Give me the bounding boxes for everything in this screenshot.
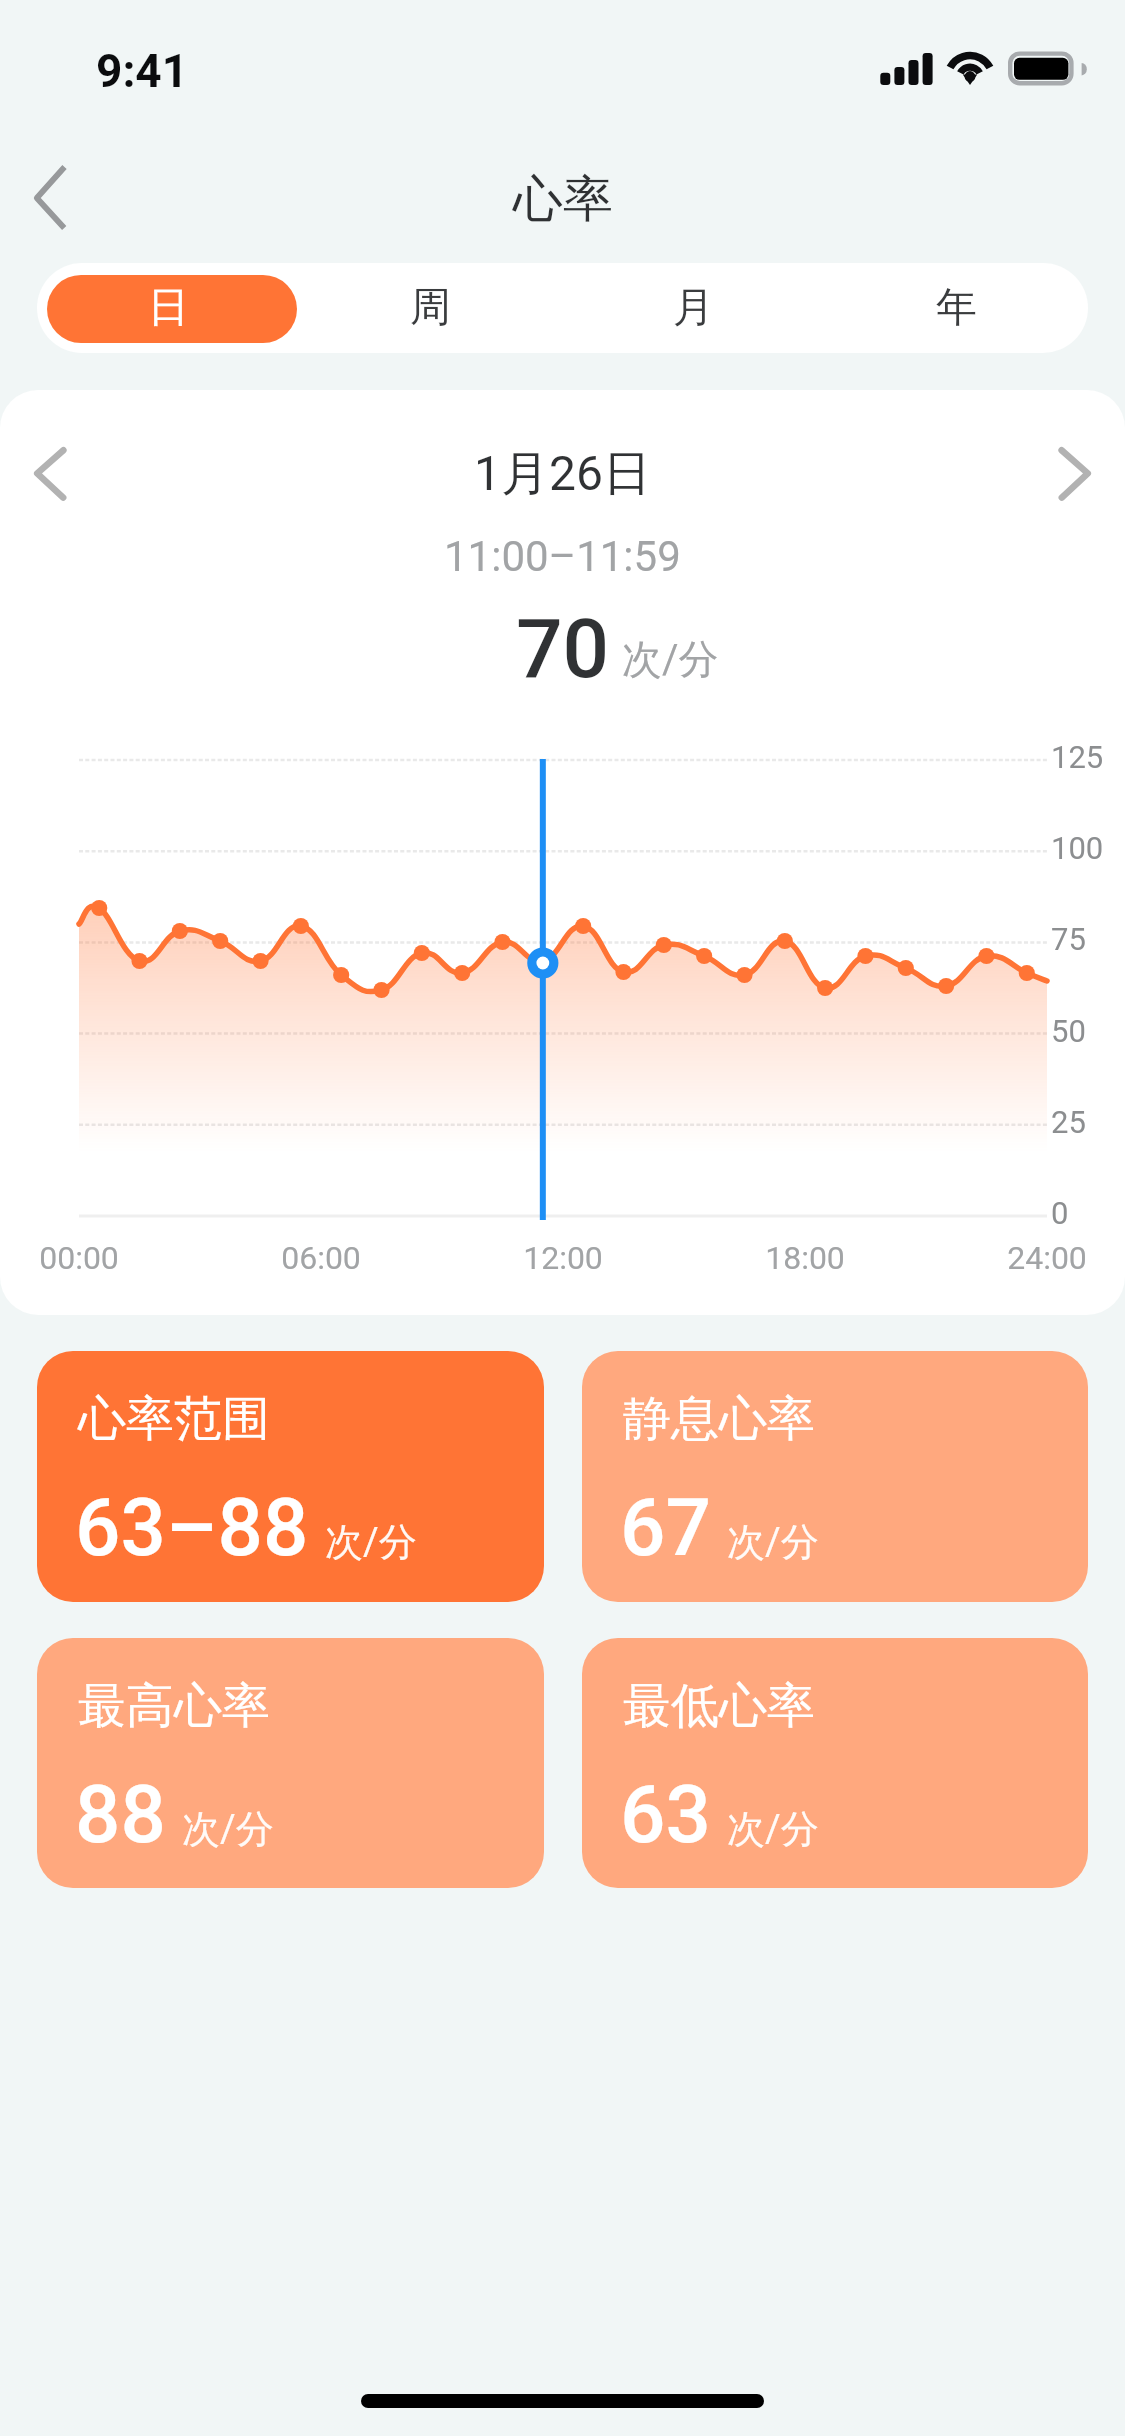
- staticText: 18:00: [765, 1239, 845, 1277]
- staticText: 00:00: [39, 1239, 119, 1277]
- staticText: 月: [673, 282, 714, 334]
- staticText: 06:00: [281, 1239, 361, 1277]
- staticText: 88: [75, 1768, 166, 1862]
- staticText: 次/分: [727, 1805, 819, 1853]
- staticText: 日: [148, 282, 189, 334]
- staticText: 0: [1051, 1195, 1069, 1231]
- staticText: 75: [1051, 921, 1086, 957]
- staticText: 100: [1051, 830, 1104, 866]
- button[interactable]: Back: [8, 152, 108, 244]
- staticText: 次/分: [622, 634, 719, 684]
- button[interactable]: 周: [299, 263, 562, 353]
- staticText: 67: [620, 1481, 711, 1575]
- staticText: 年: [936, 282, 977, 334]
- button[interactable]: Next day: [1015, 423, 1125, 523]
- button[interactable]: 静息心率: [582, 1351, 1088, 1602]
- staticText: 心率范围: [78, 1389, 270, 1449]
- staticText: 63: [620, 1768, 711, 1862]
- staticText: 9:41: [96, 44, 189, 98]
- staticText: 125: [1051, 739, 1104, 775]
- staticText: 25: [1051, 1104, 1086, 1140]
- button[interactable]: 日: [37, 263, 299, 353]
- staticText: 次/分: [727, 1518, 819, 1566]
- staticText: 最低心率: [623, 1676, 815, 1736]
- button[interactable]: Previous day: [0, 423, 110, 523]
- staticText: 周: [410, 282, 451, 334]
- staticText: 1月26日: [474, 444, 651, 504]
- button[interactable]: 年: [825, 263, 1088, 353]
- button[interactable]: 最低心率: [582, 1638, 1088, 1888]
- staticText: 63–88: [75, 1481, 309, 1575]
- staticText: 次/分: [325, 1518, 417, 1566]
- staticText: 70: [516, 601, 610, 697]
- button[interactable]: 心率范围: [37, 1351, 544, 1602]
- button[interactable]: 月: [562, 263, 825, 353]
- staticText: 12:00: [523, 1239, 603, 1277]
- staticText: 50: [1051, 1013, 1086, 1049]
- staticText: 24:00: [1007, 1239, 1087, 1277]
- staticText: 心率: [513, 168, 613, 231]
- button[interactable]: 最高心率: [37, 1638, 544, 1888]
- staticText: 11:00–11:59: [444, 532, 681, 581]
- staticText: 静息心率: [623, 1389, 815, 1449]
- staticText: 次/分: [182, 1805, 274, 1853]
- staticText: 最高心率: [78, 1676, 270, 1736]
